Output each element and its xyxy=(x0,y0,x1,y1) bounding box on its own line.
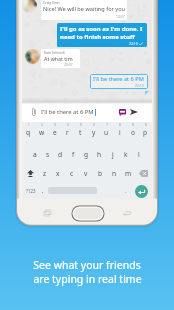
staticText: need to finish some stuff xyxy=(60,33,135,41)
staticText: e xyxy=(53,128,57,137)
staticText: c xyxy=(70,169,74,178)
staticText: 9 xyxy=(132,123,134,127)
staticText: v xyxy=(84,169,88,178)
staticText: 8 xyxy=(119,123,121,127)
button[interactable]: 9 xyxy=(126,123,139,141)
button[interactable]: 7 xyxy=(100,123,113,141)
staticText: 4 xyxy=(67,123,69,127)
button[interactable]: , xyxy=(38,185,47,196)
button[interactable]: d xyxy=(54,149,67,159)
button[interactable]: Kate Schmidt xyxy=(41,49,80,68)
button[interactable]: n xyxy=(107,168,121,178)
button[interactable]: f xyxy=(67,149,80,159)
button[interactable]: z xyxy=(38,168,51,178)
staticText: 7 xyxy=(106,123,108,127)
staticText: s xyxy=(46,150,50,159)
button[interactable]: Contact photo xyxy=(22,0,37,13)
staticText: h xyxy=(97,150,102,159)
staticText: ?123 xyxy=(26,188,36,194)
button[interactable]: k xyxy=(119,149,132,159)
staticText: 6 xyxy=(93,123,95,127)
staticText: At what tim xyxy=(44,55,73,62)
staticText: z xyxy=(43,169,47,178)
staticText: d xyxy=(58,150,63,159)
button[interactable]: Craig Sims xyxy=(41,0,127,20)
button[interactable]: Enter xyxy=(135,185,148,198)
staticText: x xyxy=(56,169,60,178)
staticText: b xyxy=(98,169,103,178)
staticText: are typing in real time xyxy=(33,272,142,286)
staticText: , xyxy=(42,187,44,195)
staticText: g xyxy=(84,150,89,159)
button[interactable]: I'll be there at 6 PM xyxy=(90,74,148,89)
button[interactable]: b xyxy=(93,168,107,178)
staticText: 5 xyxy=(80,123,82,127)
staticText: 0 xyxy=(145,123,147,127)
button[interactable]: g xyxy=(80,149,93,159)
button[interactable]: 5 xyxy=(74,123,87,141)
button[interactable]: 6 xyxy=(87,123,100,141)
staticText: Nice! We will be waiting for you xyxy=(43,5,125,13)
staticText: 20:57 xyxy=(64,62,73,67)
button[interactable]: 3 xyxy=(48,123,61,141)
button[interactable]: Attach xyxy=(28,106,40,118)
button[interactable]: 1 xyxy=(22,123,35,141)
button[interactable]: v xyxy=(79,168,93,178)
staticText: a xyxy=(33,150,37,159)
button[interactable]: c xyxy=(65,168,79,178)
staticText: i xyxy=(119,128,121,137)
staticText: k xyxy=(124,150,128,159)
staticText: Kate Schmidt xyxy=(44,50,65,54)
button[interactable]: Shift xyxy=(22,168,38,178)
staticText: 1 xyxy=(28,123,30,127)
staticText: 3 xyxy=(54,123,56,127)
staticText: p xyxy=(143,128,148,137)
staticText: u xyxy=(104,128,109,137)
button[interactable]: x xyxy=(51,168,65,178)
staticText: l xyxy=(138,150,140,159)
staticText: 22:16 xyxy=(129,41,138,46)
staticText: See what your friends xyxy=(33,258,141,272)
staticText: w xyxy=(39,128,45,137)
button[interactable]: s xyxy=(41,149,54,159)
staticText: r xyxy=(66,128,69,137)
staticText: y xyxy=(92,128,96,137)
staticText: q xyxy=(26,128,31,137)
button[interactable]: j xyxy=(106,149,119,159)
button[interactable]: Back xyxy=(122,208,132,218)
button[interactable]: . xyxy=(121,185,130,196)
staticText: 22:10 xyxy=(135,83,144,88)
button[interactable]: Contact photo xyxy=(25,49,40,64)
staticText: n xyxy=(112,169,117,178)
staticText: j xyxy=(112,150,114,159)
button[interactable]: h xyxy=(93,149,106,159)
button[interactable]: Recents xyxy=(42,208,52,218)
staticText: f xyxy=(72,150,75,159)
staticText: t xyxy=(79,128,82,137)
staticText: 2 xyxy=(41,123,43,127)
button[interactable]: Send xyxy=(128,106,140,118)
button[interactable]: m xyxy=(121,168,135,178)
staticText: I'll go as soon as I'm done. I xyxy=(60,25,143,33)
button[interactable]: Backspace xyxy=(135,168,152,178)
button[interactable]: 8 xyxy=(113,123,126,141)
button[interactable]: Home xyxy=(72,206,104,221)
button[interactable]: 4 xyxy=(61,123,74,141)
staticText: o xyxy=(131,128,135,137)
button[interactable]: ?123 xyxy=(23,185,39,196)
button[interactable]: 0 xyxy=(139,123,152,141)
staticText: . xyxy=(125,187,127,195)
button[interactable]: a xyxy=(29,149,41,159)
staticText: m xyxy=(125,169,132,178)
button[interactable]: l xyxy=(132,149,145,159)
button[interactable]: I'll go as soon as I'm done. I xyxy=(57,23,147,47)
button[interactable]: Live stickers xyxy=(116,106,128,118)
staticText: I'll be there at 6 PM xyxy=(41,108,94,116)
staticText: I'll be there at 6 PM xyxy=(93,75,144,83)
staticText: Craig Sims xyxy=(43,0,60,4)
button[interactable]: 2 xyxy=(35,123,48,141)
staticText: 12:57 xyxy=(116,14,125,19)
